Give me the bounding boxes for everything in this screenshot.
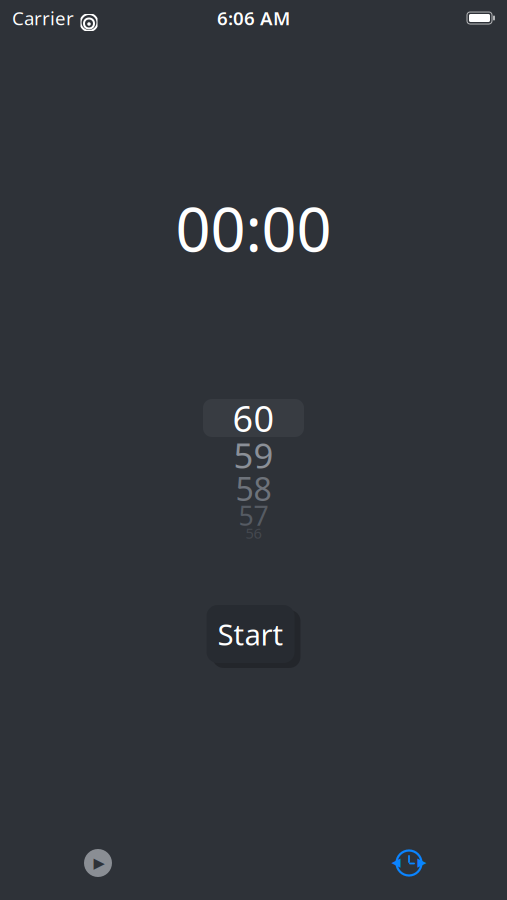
- staticText: Carrier: [12, 6, 74, 30]
- staticText: 00:00: [175, 187, 331, 269]
- button[interactable]: Play: [68, 841, 128, 885]
- staticText: 56: [245, 523, 261, 543]
- staticText: ◀: [391, 855, 400, 869]
- staticText: ▶: [93, 855, 104, 871]
- staticText: ▶: [417, 855, 426, 869]
- staticText: Start: [217, 614, 283, 653]
- staticText: 6:06 AM: [217, 6, 290, 30]
- button[interactable]: Reset timer: [379, 841, 439, 885]
- button[interactable]: Start: [206, 605, 300, 668]
- staticText: 57: [238, 498, 268, 533]
- staticText: 60: [232, 394, 274, 442]
- staticText: 58: [235, 467, 271, 510]
- staticText: 59: [233, 432, 273, 478]
